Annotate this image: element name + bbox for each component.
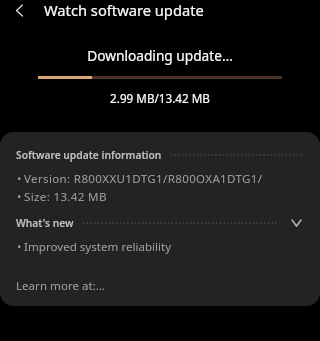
- button[interactable]: Back: [0, 0, 44, 20]
- staticText: 2.99 MB/13.42 MB: [0, 90, 320, 106]
- staticText: What's new: [16, 216, 74, 230]
- staticText: •: [17, 189, 22, 205]
- staticText: Size: 13.42 MB: [24, 189, 107, 205]
- button[interactable]: Learn more at:…: [16, 278, 106, 294]
- staticText: •: [17, 239, 22, 255]
- staticText: Improved system reliability: [24, 239, 172, 255]
- staticText: Watch software update: [44, 0, 204, 20]
- staticText: •: [17, 171, 22, 187]
- staticText: Software update information: [16, 148, 162, 162]
- staticText: Version: R800XXU1DTG1/R800OXA1DTG1/: [24, 171, 263, 187]
- staticText: Downloading update…: [0, 46, 320, 65]
- button[interactable]: What's new: [0, 214, 320, 231]
